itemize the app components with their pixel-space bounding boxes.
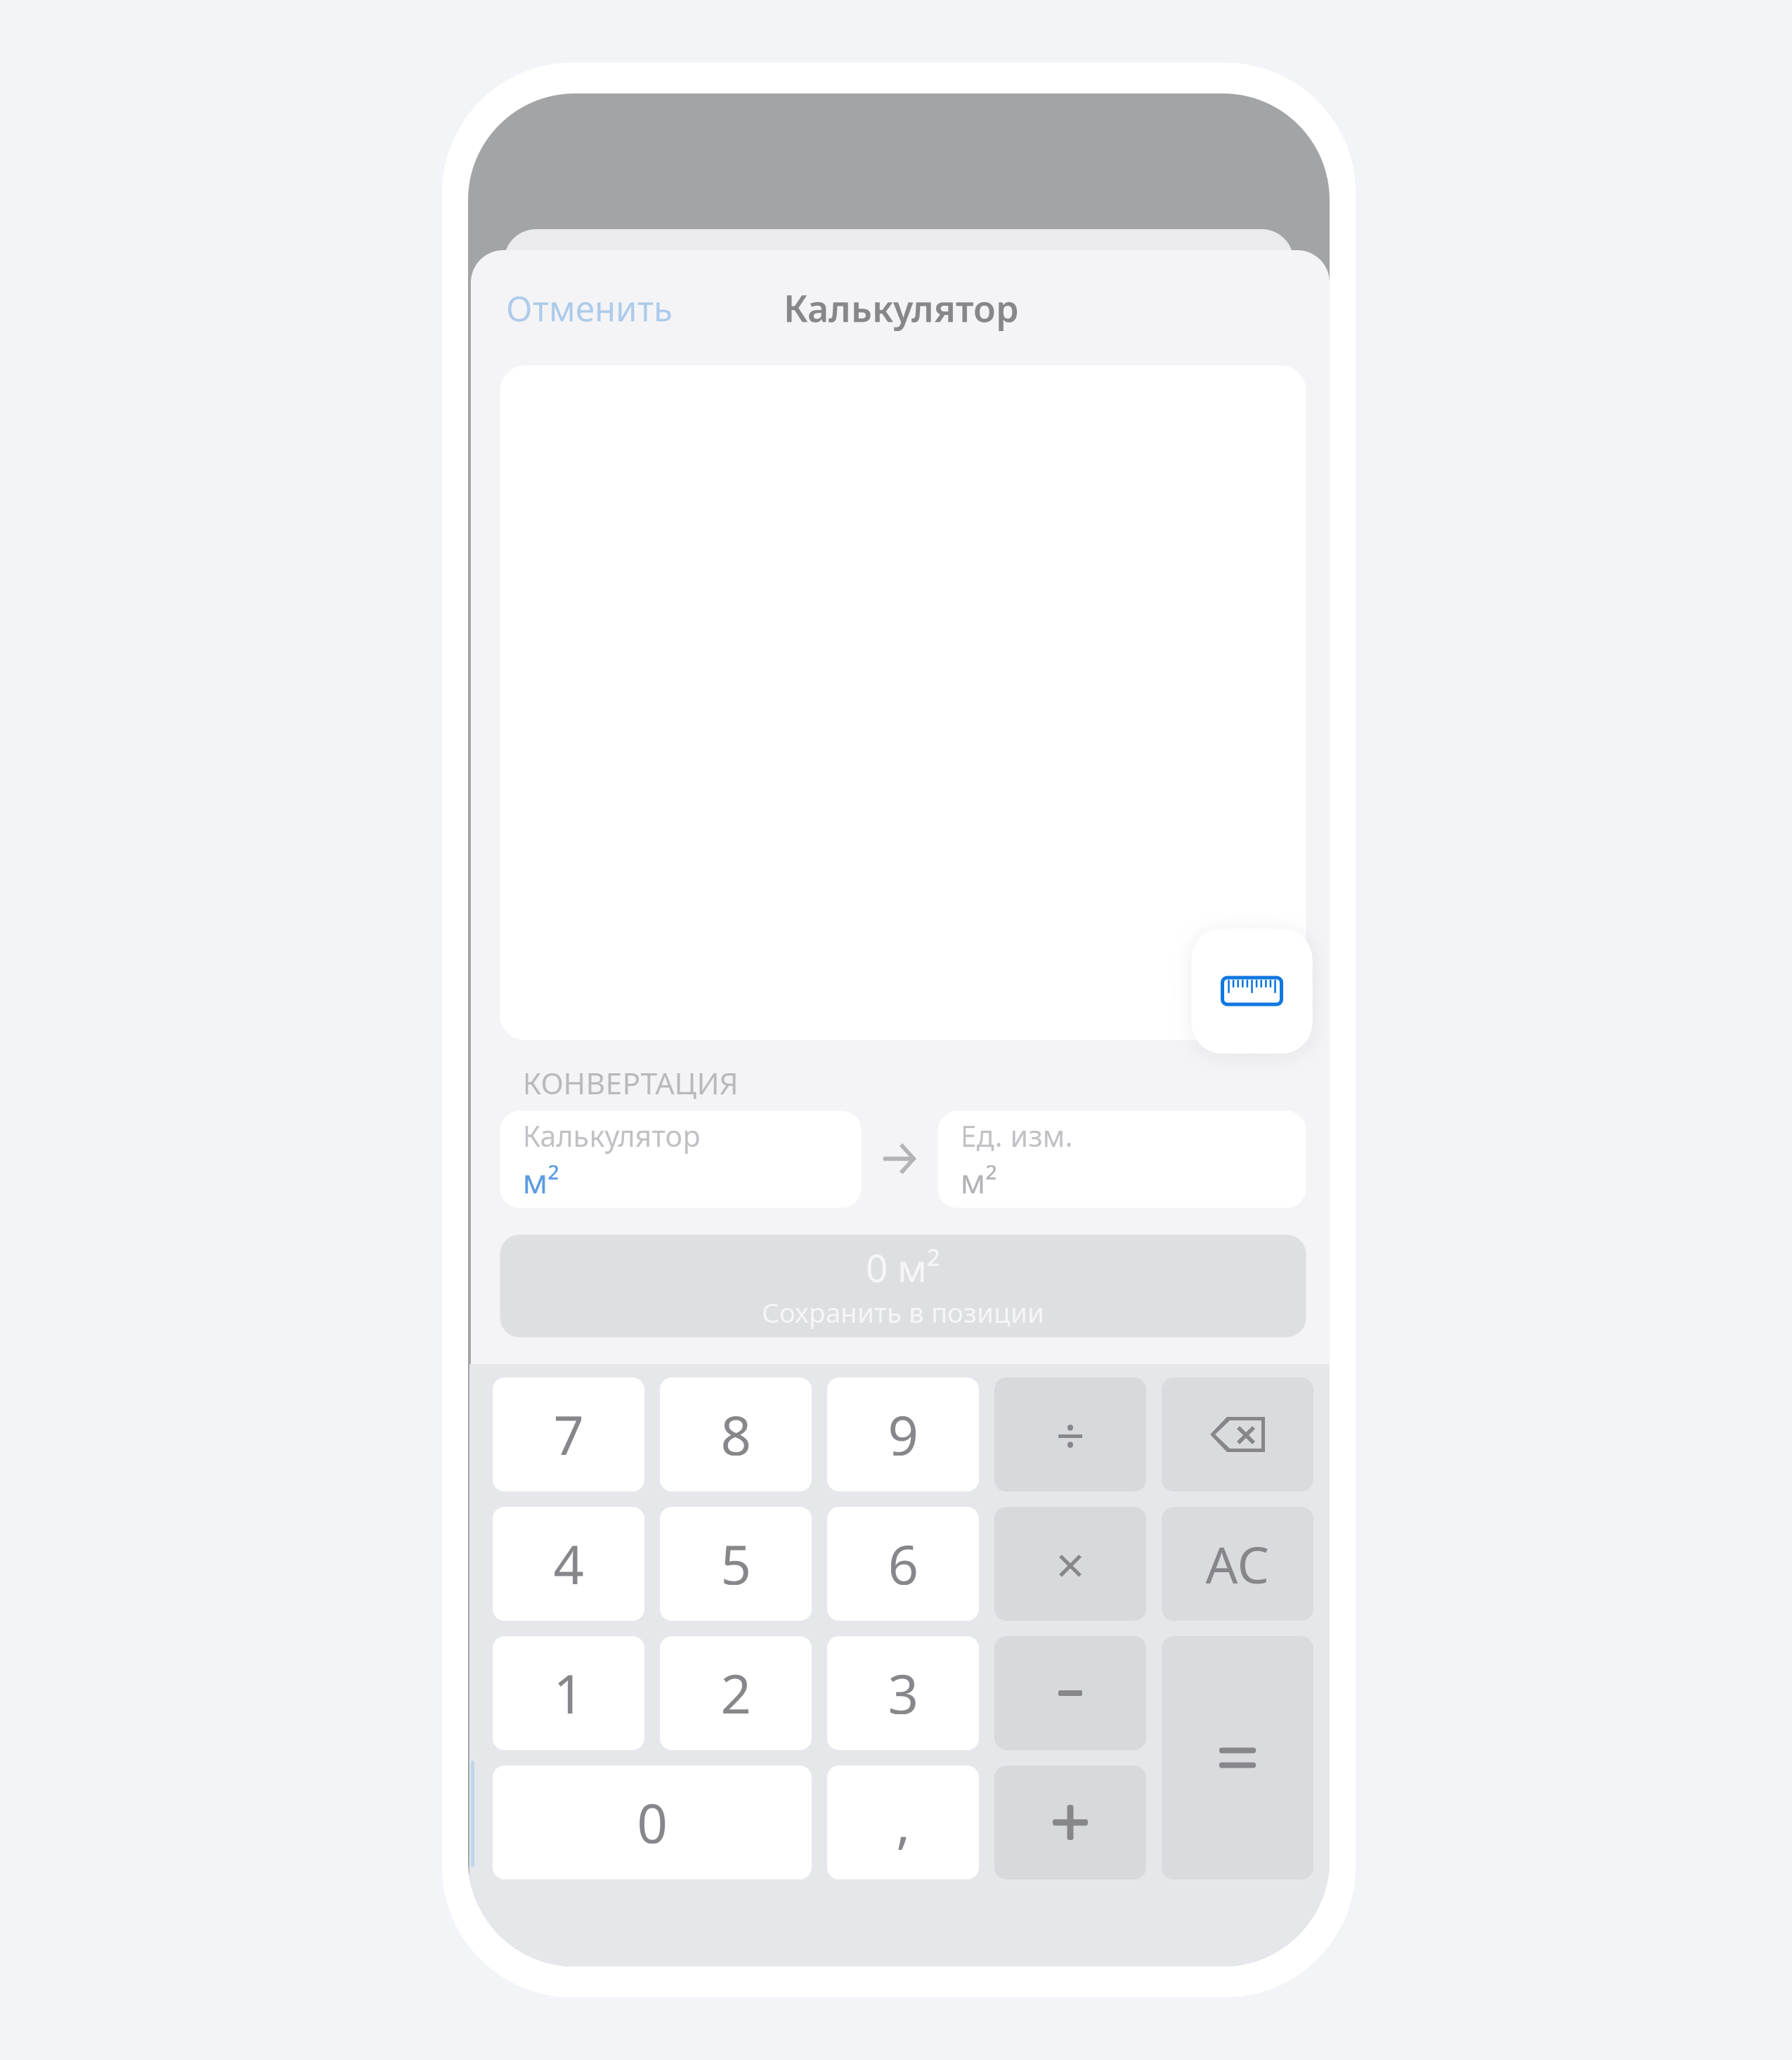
staticText: AC xyxy=(1206,1530,1270,1597)
staticText: м² xyxy=(522,1159,559,1203)
button[interactable]: 0 xyxy=(493,1766,812,1879)
button[interactable]: Единицы измерения xyxy=(1192,928,1312,1054)
staticText: 1 xyxy=(553,1658,584,1729)
button[interactable]: 6 xyxy=(827,1507,979,1621)
button[interactable]: Ед. изм. xyxy=(938,1111,1306,1208)
staticText: 9 xyxy=(888,1399,918,1470)
staticText: × xyxy=(1056,1530,1085,1597)
staticText: 7 xyxy=(553,1399,584,1470)
button[interactable]: 2 xyxy=(660,1636,812,1750)
staticText: ÷ xyxy=(1056,1401,1085,1468)
button[interactable]: AC xyxy=(1162,1507,1313,1621)
staticText: 2 xyxy=(721,1658,751,1729)
button[interactable]: ÷ xyxy=(994,1378,1146,1491)
staticText: Калькулятор xyxy=(522,1116,700,1155)
staticText: 5 xyxy=(721,1528,751,1599)
staticText: Сохранить в позиции xyxy=(762,1294,1044,1330)
button[interactable]: Калькулятор xyxy=(500,1111,861,1208)
staticText: Отменить xyxy=(506,285,673,331)
staticText: 3 xyxy=(888,1658,918,1729)
button[interactable]: 3 xyxy=(827,1636,979,1750)
button[interactable]: 4 xyxy=(493,1507,644,1621)
staticText: 6 xyxy=(888,1528,918,1599)
button[interactable]: 5 xyxy=(660,1507,812,1621)
button[interactable]: 1 xyxy=(493,1636,644,1750)
button[interactable]: × xyxy=(994,1507,1146,1621)
staticText: 4 xyxy=(553,1528,584,1599)
staticText: 0 м² xyxy=(866,1242,940,1293)
button[interactable]: Равно xyxy=(1162,1636,1313,1879)
staticText: КОНВЕРТАЦИЯ xyxy=(522,1063,738,1103)
button[interactable]: , xyxy=(827,1766,979,1879)
staticText: , xyxy=(896,1787,910,1858)
button[interactable]: 9 xyxy=(827,1378,979,1491)
staticText: 0 xyxy=(637,1787,667,1858)
button[interactable]: Плюс xyxy=(994,1766,1146,1879)
button[interactable]: 8 xyxy=(660,1378,812,1491)
staticText: 8 xyxy=(721,1399,751,1470)
button[interactable]: Отменить xyxy=(469,264,694,352)
staticText: м² xyxy=(960,1159,997,1203)
button[interactable]: Удалить xyxy=(1162,1378,1313,1491)
staticText: Ед. изм. xyxy=(960,1116,1073,1155)
button[interactable]: 7 xyxy=(493,1378,644,1491)
staticText: Калькулятор xyxy=(784,284,1019,332)
button[interactable]: 0 м² xyxy=(500,1235,1306,1337)
button[interactable]: Минус xyxy=(994,1636,1146,1750)
